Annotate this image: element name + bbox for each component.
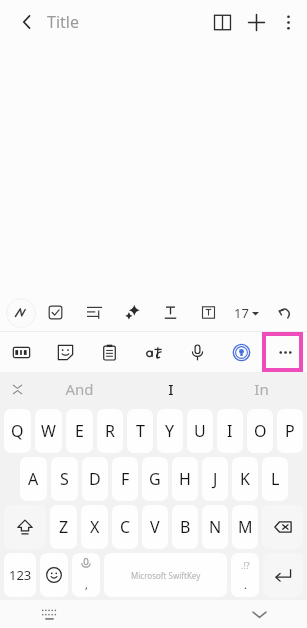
button[interactable]: Copilot xyxy=(219,332,263,372)
button[interactable]: C xyxy=(112,505,138,549)
button[interactable]: Q xyxy=(4,409,31,453)
staticText: S xyxy=(60,468,69,490)
button[interactable]: O xyxy=(247,409,273,453)
staticText: Q xyxy=(11,420,24,442)
button[interactable]: Y xyxy=(157,409,183,453)
staticText: V xyxy=(150,516,160,538)
staticText: I xyxy=(168,379,174,399)
button[interactable]: D xyxy=(82,457,108,501)
button[interactable]: 17 xyxy=(227,294,265,331)
button[interactable]: Enter xyxy=(263,553,303,597)
staticText: I xyxy=(227,420,233,442)
button[interactable]: J xyxy=(202,457,228,501)
button[interactable]: Close suggestions xyxy=(0,372,34,406)
button[interactable]: Language xyxy=(131,332,175,372)
button[interactable]: Effects xyxy=(113,294,151,331)
button[interactable]: Checklist xyxy=(36,294,75,331)
staticText: In xyxy=(254,379,269,399)
staticText: A xyxy=(28,468,39,490)
staticText: U xyxy=(194,420,206,442)
button[interactable]: And xyxy=(34,372,125,406)
button[interactable]: Back xyxy=(10,5,44,39)
button[interactable]: X xyxy=(81,505,108,549)
button[interactable]: P xyxy=(277,409,303,453)
staticText: .!? xyxy=(241,559,250,571)
staticText: E xyxy=(75,420,84,442)
button[interactable]: Space xyxy=(104,553,227,597)
staticText: Y xyxy=(165,420,175,442)
staticText: Title xyxy=(47,11,79,33)
button[interactable]: F xyxy=(112,457,138,501)
button[interactable]: Text box xyxy=(189,294,227,331)
button[interactable]: Text format xyxy=(151,294,189,331)
button[interactable]: Voice and comma xyxy=(72,553,100,597)
button[interactable]: R xyxy=(97,409,123,453)
button[interactable]: Hide keyboard xyxy=(246,601,272,627)
button[interactable]: U xyxy=(187,409,213,453)
staticText: C xyxy=(120,516,131,538)
button[interactable]: S xyxy=(51,457,78,501)
button[interactable]: Voice input xyxy=(175,332,219,372)
staticText: M xyxy=(238,516,253,538)
button[interactable]: K xyxy=(232,457,258,501)
button[interactable]: B xyxy=(172,505,198,549)
staticText: O xyxy=(254,420,267,442)
button[interactable]: T xyxy=(127,409,153,453)
staticText: , xyxy=(85,577,88,592)
staticText: N xyxy=(209,516,222,538)
button[interactable]: E xyxy=(66,409,93,453)
staticText: Microsoft SwiftKey xyxy=(131,570,201,581)
button[interactable]: In xyxy=(216,372,307,406)
button[interactable]: Z xyxy=(50,505,77,549)
button[interactable]: Add xyxy=(239,5,273,39)
staticText: J xyxy=(213,468,218,490)
button[interactable]: I xyxy=(217,409,243,453)
button[interactable]: W xyxy=(35,409,62,453)
button[interactable]: Numbers xyxy=(4,553,36,597)
button[interactable]: H xyxy=(172,457,198,501)
button[interactable]: Stickers xyxy=(43,332,87,372)
button[interactable]: Punctuation xyxy=(231,553,259,597)
button[interactable]: I xyxy=(125,372,216,406)
staticText: 17 xyxy=(234,304,249,322)
button[interactable]: Clipboard xyxy=(87,332,131,372)
button[interactable]: Shift xyxy=(4,505,46,549)
staticText: And xyxy=(65,379,94,399)
button[interactable]: More options xyxy=(273,7,303,37)
button[interactable]: More xyxy=(263,332,307,372)
button[interactable]: M xyxy=(232,505,258,549)
staticText: B xyxy=(180,516,191,538)
staticText: T xyxy=(136,420,145,442)
staticText: W xyxy=(41,420,56,442)
staticText: H xyxy=(179,468,191,490)
button[interactable]: V xyxy=(142,505,168,549)
staticText: . xyxy=(244,577,247,592)
button[interactable]: Ink xyxy=(6,298,36,328)
staticText: Z xyxy=(59,516,69,538)
button[interactable]: A xyxy=(20,457,47,501)
button[interactable]: Indent xyxy=(75,294,113,331)
staticText: R xyxy=(105,420,115,442)
button[interactable]: L xyxy=(262,457,288,501)
button[interactable]: Keyboard xyxy=(36,601,62,627)
button[interactable]: Read mode xyxy=(205,5,239,39)
button[interactable]: GIF xyxy=(0,332,43,372)
staticText: F xyxy=(121,468,130,490)
staticText: G xyxy=(149,468,161,490)
button[interactable]: Backspace xyxy=(262,505,303,549)
button[interactable]: Emoji xyxy=(40,553,68,597)
button[interactable]: Undo xyxy=(265,294,303,331)
button[interactable]: G xyxy=(142,457,168,501)
staticText: P xyxy=(285,420,295,442)
staticText: L xyxy=(271,468,280,490)
staticText: 123 xyxy=(9,566,32,584)
button[interactable]: N xyxy=(202,505,228,549)
staticText: D xyxy=(89,468,101,490)
staticText: K xyxy=(240,468,250,490)
staticText: X xyxy=(90,516,100,538)
